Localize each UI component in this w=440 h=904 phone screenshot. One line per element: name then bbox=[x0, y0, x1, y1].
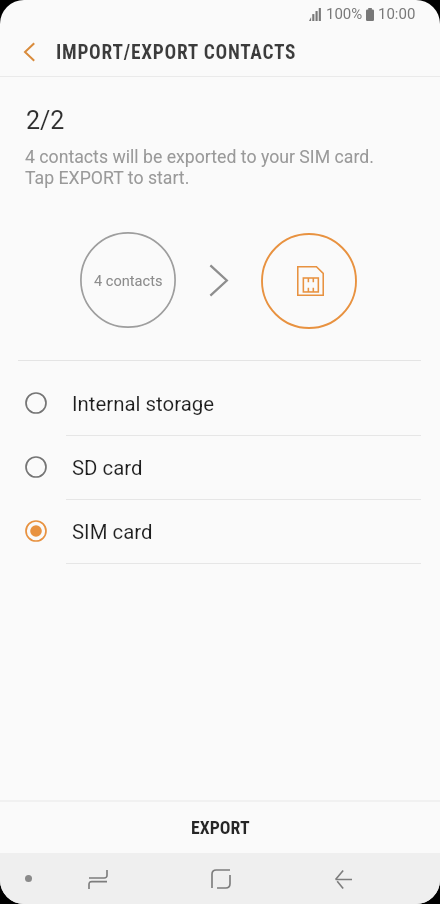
button[interactable]: SD card bbox=[0, 436, 440, 500]
button[interactable]: SIM card bbox=[0, 500, 440, 564]
button[interactable]: EXPORT bbox=[0, 802, 440, 853]
button[interactable]: More options bbox=[10, 860, 46, 896]
staticText: SIM card bbox=[72, 520, 153, 544]
staticText: IMPORT/EXPORT CONTACTS bbox=[56, 41, 297, 64]
staticText: 2/2 bbox=[26, 106, 65, 135]
button[interactable]: Navigate up bbox=[5, 32, 53, 72]
staticText: 100% bbox=[326, 5, 363, 23]
staticText: 4 contacts will be exported to your SIM … bbox=[25, 147, 374, 189]
button[interactable]: Internal storage bbox=[0, 371, 440, 436]
staticText: 4 contacts bbox=[94, 272, 163, 289]
button[interactable]: Home bbox=[196, 857, 245, 901]
staticText: EXPORT bbox=[191, 817, 250, 838]
button[interactable]: Recent apps bbox=[73, 857, 122, 901]
button[interactable]: Back bbox=[319, 857, 368, 901]
staticText: 10:00 bbox=[378, 5, 416, 23]
staticText: Internal storage bbox=[72, 392, 215, 416]
staticText: SD card bbox=[72, 456, 143, 480]
